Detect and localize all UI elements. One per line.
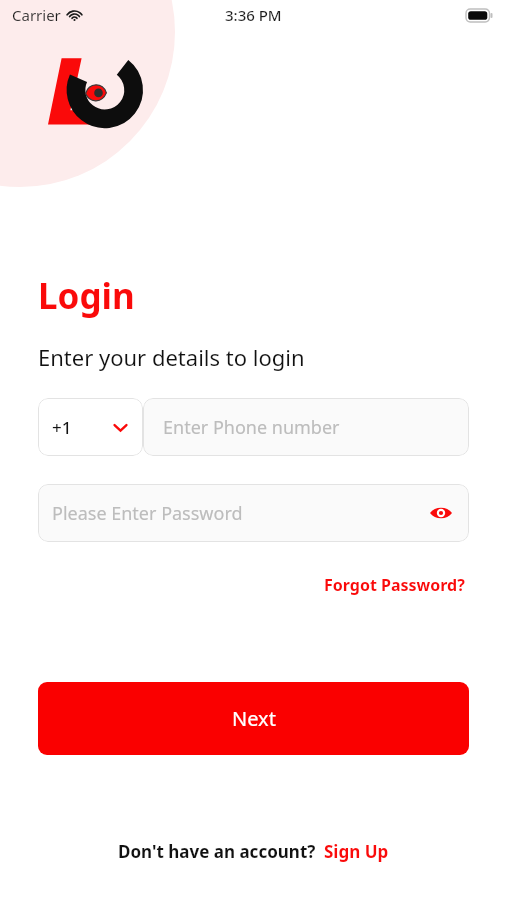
staticText: Login xyxy=(38,272,135,320)
staticText: Don't have an account? xyxy=(118,840,316,863)
staticText: Next xyxy=(232,705,276,732)
button[interactable]: +1 xyxy=(38,398,143,456)
staticText: Carrier xyxy=(12,5,61,25)
button[interactable]: Please Enter Password xyxy=(38,484,469,542)
staticText: +1 xyxy=(52,416,72,439)
staticText: 3:36 PM xyxy=(225,5,282,25)
button[interactable]: Forgot Password? xyxy=(320,570,469,600)
button[interactable]: Next xyxy=(38,682,469,755)
button[interactable]: Show password xyxy=(425,497,457,529)
staticText: Enter Phone number xyxy=(163,415,340,440)
staticText: Enter your details to login xyxy=(38,342,305,372)
button[interactable]: Sign Up xyxy=(324,840,389,863)
button[interactable]: Enter Phone number xyxy=(143,398,469,456)
staticText: Please Enter Password xyxy=(52,501,243,526)
